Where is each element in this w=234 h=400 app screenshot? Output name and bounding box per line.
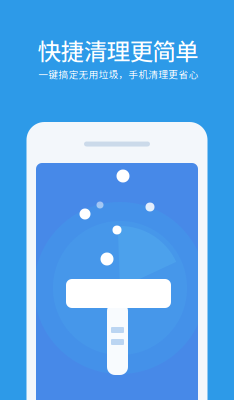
staticText: 快捷清理更简单 — [37, 33, 198, 67]
staticText: 一键搞定无用垃圾，手机清理更省心 — [38, 67, 198, 81]
